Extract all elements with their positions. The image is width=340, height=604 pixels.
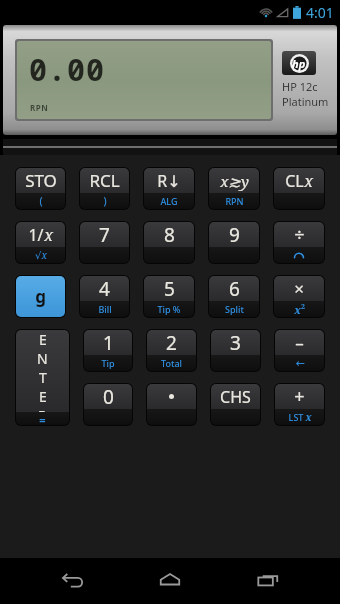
button[interactable]: 1	[84, 330, 132, 371]
staticText: 2	[166, 330, 177, 355]
staticText: 5	[164, 276, 175, 301]
button[interactable]: 4	[80, 276, 129, 317]
staticText: 0.00	[29, 49, 105, 90]
staticText: ×	[294, 277, 304, 300]
staticText: )	[103, 194, 107, 208]
staticText: hp	[292, 56, 306, 71]
staticText: √x	[35, 248, 47, 262]
button[interactable]: STO	[16, 168, 65, 209]
staticText: –	[295, 331, 304, 354]
button[interactable]: 6	[209, 276, 259, 317]
staticText: CHS	[220, 386, 251, 408]
staticText: LST	[287, 411, 305, 423]
button[interactable]: Back	[48, 558, 98, 604]
staticText: +	[294, 384, 305, 409]
staticText: RPN	[30, 102, 49, 113]
staticText: (	[39, 194, 43, 208]
staticText: 8	[164, 222, 175, 247]
staticText: 4	[99, 276, 110, 301]
staticText: RCL	[89, 169, 120, 192]
staticText: N	[37, 349, 48, 368]
button[interactable]: Home	[145, 558, 195, 604]
staticText: x	[294, 302, 301, 317]
staticText: Platinum	[282, 94, 329, 109]
staticText: R	[38, 406, 47, 412]
button[interactable]: Decimal point	[147, 384, 196, 425]
staticText: 0	[103, 384, 114, 409]
staticText: Tip	[101, 357, 115, 369]
button[interactable]: Multiply	[274, 276, 324, 317]
staticText: CL	[285, 170, 304, 192]
button[interactable]: R↓	[144, 168, 194, 209]
button[interactable]: E	[16, 330, 69, 425]
button[interactable]: g shift	[16, 276, 65, 317]
staticText: STO	[25, 169, 57, 192]
staticText: HP 12c	[282, 79, 318, 94]
staticText: 2	[301, 302, 305, 312]
button[interactable]: 5	[144, 276, 194, 317]
staticText: g	[35, 285, 46, 308]
button[interactable]: 1/	[16, 222, 65, 263]
staticText: RPN	[225, 195, 244, 207]
staticText: E	[39, 330, 47, 349]
staticText: R↓	[157, 170, 181, 192]
staticText: 7	[99, 222, 110, 247]
staticText: 3	[230, 330, 241, 355]
staticText: 6	[229, 276, 240, 301]
staticText: ←	[295, 357, 305, 370]
staticText: 1	[103, 330, 114, 355]
staticText: x≳y	[220, 171, 249, 191]
button[interactable]: 3	[211, 330, 260, 371]
staticText: 1/	[28, 224, 44, 246]
staticText: Bill	[98, 303, 112, 315]
button[interactable]: Recent apps	[243, 558, 293, 604]
button[interactable]: Divide	[274, 222, 324, 263]
staticText: x	[305, 410, 312, 424]
staticText: T	[39, 368, 47, 387]
staticText: x	[304, 170, 313, 192]
button[interactable]: CHS	[211, 384, 260, 425]
button[interactable]: 2	[147, 330, 196, 371]
button[interactable]: x≳y	[209, 168, 259, 209]
staticText: ALG	[160, 195, 178, 207]
staticText: x	[44, 224, 53, 246]
button[interactable]: CL	[274, 168, 324, 209]
staticText: Total	[161, 357, 182, 369]
staticText: ÷	[294, 222, 305, 247]
staticText: 4:01	[306, 3, 334, 22]
button[interactable]: 8	[144, 222, 194, 263]
button[interactable]: Plus	[275, 384, 324, 425]
staticText: Split	[225, 303, 244, 315]
button[interactable]: 9	[209, 222, 259, 263]
button[interactable]: Minus	[275, 330, 324, 371]
staticText: E	[39, 387, 47, 406]
button[interactable]: 7	[80, 222, 129, 263]
staticText: Tip %	[157, 303, 181, 315]
staticText: 9	[229, 222, 240, 247]
staticText: =	[39, 412, 46, 425]
button[interactable]: 0	[84, 384, 132, 425]
button[interactable]: RCL	[80, 168, 129, 209]
